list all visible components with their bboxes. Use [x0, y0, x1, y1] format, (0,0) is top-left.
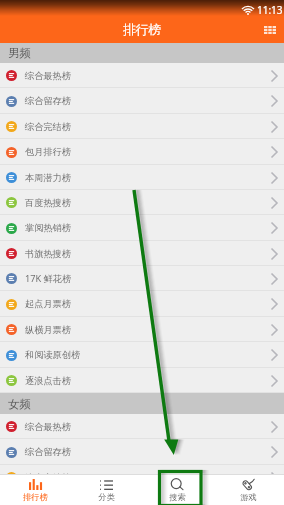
- staticText: 男频: [8, 46, 31, 60]
- staticText: 女频: [8, 397, 31, 411]
- staticText: 掌阅热销榜: [25, 222, 271, 234]
- staticText: 综合留存榜: [25, 95, 271, 107]
- staticText: 书旗热搜榜: [25, 248, 271, 260]
- staticText: 综合留存榜: [25, 446, 271, 458]
- staticText: 纵横月票榜: [25, 324, 271, 336]
- staticText: 包月排行榜: [25, 146, 271, 158]
- button[interactable]: 综合最热榜: [0, 414, 284, 439]
- button[interactable]: 书旗热搜榜: [0, 241, 284, 266]
- staticText: 排行榜: [123, 22, 162, 38]
- button[interactable]: 本周潜力榜: [0, 165, 284, 190]
- button[interactable]: 综合完结榜: [0, 465, 284, 490]
- button[interactable]: 搜索: [142, 474, 213, 505]
- staticText: 起点月票榜: [25, 298, 271, 310]
- button[interactable]: 17K 鲜花榜: [0, 266, 284, 291]
- button[interactable]: 百度热搜榜: [0, 190, 284, 215]
- button[interactable]: Menu: [255, 17, 284, 43]
- button[interactable]: 掌阅热销榜: [0, 215, 284, 241]
- button[interactable]: 排行榜: [0, 474, 71, 505]
- staticText: 分类: [98, 492, 115, 502]
- button[interactable]: 纵横月票榜: [0, 317, 284, 342]
- button[interactable]: 综合留存榜: [0, 439, 284, 465]
- button[interactable]: 游戏: [213, 474, 284, 505]
- staticText: 和阅读原创榜: [25, 349, 271, 361]
- staticText: 综合最热榜: [25, 70, 271, 82]
- button[interactable]: 综合最热榜: [0, 63, 284, 88]
- button[interactable]: 分类: [71, 474, 142, 505]
- staticText: 本周潜力榜: [25, 172, 271, 184]
- button[interactable]: 起点月票榜: [0, 291, 284, 317]
- staticText: 搜索: [169, 492, 186, 502]
- button[interactable]: 逐浪点击榜: [0, 368, 284, 393]
- button[interactable]: 综合完结榜: [0, 114, 284, 139]
- staticText: 综合完结榜: [25, 472, 271, 484]
- staticText: 游戏: [240, 492, 257, 502]
- staticText: 逐浪点击榜: [25, 375, 271, 387]
- button[interactable]: 和阅读原创榜: [0, 342, 284, 368]
- staticText: 11:13: [257, 3, 283, 17]
- staticText: 综合最热榜: [25, 421, 271, 433]
- button[interactable]: 包月排行榜: [0, 139, 284, 165]
- button[interactable]: 综合留存榜: [0, 88, 284, 114]
- staticText: 排行榜: [23, 492, 48, 502]
- staticText: 综合完结榜: [25, 121, 271, 133]
- staticText: 17K 鲜花榜: [25, 272, 271, 285]
- staticText: 百度热搜榜: [25, 197, 271, 209]
